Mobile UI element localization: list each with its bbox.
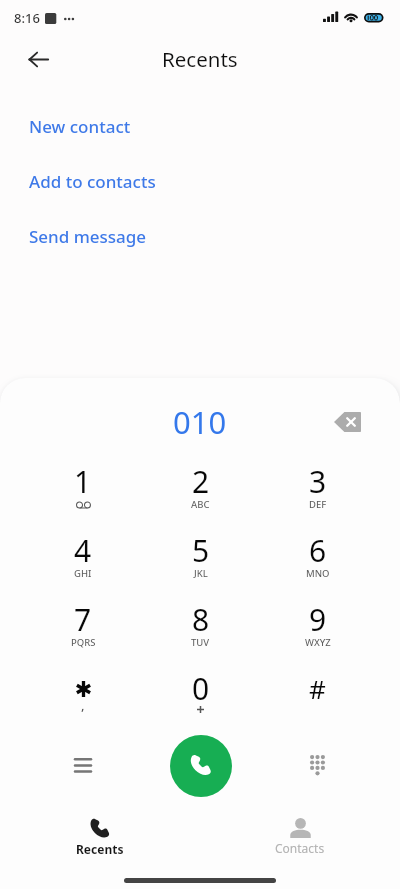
button[interactable]: , xyxy=(24,667,142,736)
staticText: MNO xyxy=(306,567,330,580)
button[interactable]: Call history xyxy=(24,736,142,802)
button[interactable]: Dialpad xyxy=(259,736,376,802)
button[interactable]: Recents xyxy=(0,805,200,863)
staticText: , xyxy=(81,696,85,714)
button[interactable]: 1 xyxy=(24,460,142,529)
staticText: 9 xyxy=(309,599,327,640)
button[interactable]: 9 xyxy=(259,598,376,667)
staticText: ABC xyxy=(191,498,210,511)
button[interactable]: Send message xyxy=(0,209,400,264)
button[interactable]: 0 xyxy=(142,667,259,736)
button[interactable]: # xyxy=(259,667,376,736)
staticText: 6 xyxy=(309,530,327,571)
button[interactable]: New contact xyxy=(0,99,400,154)
staticText: Add to contacts xyxy=(29,170,156,193)
staticText: New contact xyxy=(29,115,131,138)
staticText: 8:16 xyxy=(14,9,40,27)
button[interactable]: Contacts xyxy=(200,805,400,863)
staticText: 5 xyxy=(192,530,210,571)
staticText: 4 xyxy=(74,530,92,571)
button[interactable]: 7 xyxy=(24,598,142,667)
staticText: Recents xyxy=(76,841,124,857)
staticText: WXYZ xyxy=(305,636,331,649)
staticText: Send message xyxy=(29,225,147,248)
staticText: 3 xyxy=(309,461,327,502)
button[interactable]: 4 xyxy=(24,529,142,598)
staticText: TUV xyxy=(191,636,210,649)
button[interactable]: 3 xyxy=(259,460,376,529)
button[interactable]: Backspace xyxy=(325,400,369,444)
staticText: GHI xyxy=(74,567,92,580)
staticText: 0 xyxy=(192,668,210,709)
staticText: 1 xyxy=(74,461,92,502)
staticText: 7 xyxy=(74,599,92,640)
staticText: DEF xyxy=(309,498,327,511)
button[interactable]: Call xyxy=(142,736,259,802)
button[interactable]: 2 xyxy=(142,460,259,529)
staticText: PQRS xyxy=(71,636,96,649)
staticText: JKL xyxy=(194,567,208,580)
button[interactable]: Add to contacts xyxy=(0,154,400,209)
staticText: 8 xyxy=(192,599,210,640)
button[interactable]: 5 xyxy=(142,529,259,598)
staticText: # xyxy=(309,671,326,706)
staticText: Recents xyxy=(162,45,238,73)
staticText: Contacts xyxy=(275,840,325,856)
staticText: 2 xyxy=(192,461,210,502)
button[interactable]: 6 xyxy=(259,529,376,598)
button[interactable]: Back xyxy=(14,35,62,83)
staticText: 010 xyxy=(173,401,227,443)
button[interactable]: 8 xyxy=(142,598,259,667)
